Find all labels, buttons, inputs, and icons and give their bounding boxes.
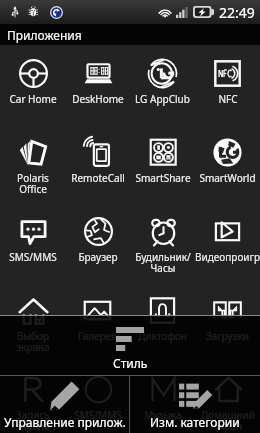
staticText: SMS/MMS <box>9 250 57 264</box>
staticText: Приложения <box>7 27 82 43</box>
button[interactable]: Видеопроигр <box>195 203 260 282</box>
button[interactable]: NFC <box>195 45 260 124</box>
staticText: Загрузки <box>206 329 249 343</box>
staticText: Изм. категории <box>150 414 240 430</box>
staticText: SmartWorld <box>199 171 256 185</box>
staticText: Галерея <box>78 329 117 343</box>
staticText: Polaris Office <box>17 171 49 196</box>
button[interactable]: SMS/MMS <box>65 361 130 433</box>
button[interactable]: DeskHome <box>65 45 130 124</box>
staticText: Стиль <box>113 355 148 371</box>
staticText: Управление прилож. <box>4 414 126 430</box>
button[interactable]: Музыка <box>130 361 195 433</box>
staticText: LG AppClub <box>135 92 190 106</box>
button[interactable]: Приложения <box>0 24 260 45</box>
staticText: Выбор экрана <box>16 329 50 354</box>
staticText: Будильник/ Часы <box>135 250 191 275</box>
staticText: Музыка <box>144 408 182 422</box>
button[interactable]: Будильник/ Часы <box>130 203 195 282</box>
button[interactable]: Галерея <box>65 282 130 361</box>
button[interactable]: Домашний экран <box>195 361 260 433</box>
staticText: Запись экрана <box>16 408 50 433</box>
staticText: Диктофон <box>138 329 187 343</box>
staticText: Браузер <box>78 250 118 264</box>
staticText: RemoteCall <box>71 171 125 185</box>
staticText: NFC <box>218 92 238 106</box>
button[interactable]: Изм. категории <box>130 376 260 433</box>
button[interactable]: Запись экрана <box>0 361 65 433</box>
staticText: SMS/MMS <box>74 408 122 422</box>
button[interactable]: Загрузки <box>195 282 260 361</box>
button[interactable]: SmartWorld <box>195 124 260 203</box>
button[interactable]: LG AppClub <box>130 45 195 124</box>
button[interactable]: RemoteCall <box>65 124 130 203</box>
staticText: 22:49 <box>219 3 255 22</box>
button[interactable]: Выбор экрана <box>0 282 65 361</box>
staticText: SmartShare <box>135 171 191 185</box>
staticText: Домашний экран <box>201 408 255 433</box>
staticText: Видеопроигр <box>195 250 260 264</box>
button[interactable]: Диктофон <box>130 282 195 361</box>
button[interactable]: Car Home <box>0 45 65 124</box>
button[interactable]: SMS/MMS <box>0 203 65 282</box>
button[interactable]: Управление прилож. <box>0 376 129 433</box>
staticText: DeskHome <box>72 92 124 106</box>
staticText: Car Home <box>9 92 57 106</box>
button[interactable]: SmartShare <box>130 124 195 203</box>
button[interactable]: Стиль <box>0 316 260 375</box>
button[interactable]: Polaris Office <box>0 124 65 203</box>
button[interactable]: Браузер <box>65 203 130 282</box>
